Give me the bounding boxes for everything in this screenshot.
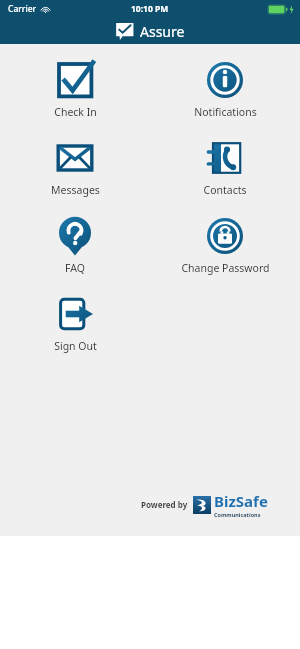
staticText: BizSafe <box>214 491 268 511</box>
other: Notifications <box>205 60 245 100</box>
staticText: Sign Out <box>54 339 97 353</box>
staticText: Communications <box>214 511 261 518</box>
staticText: Assure <box>140 22 185 41</box>
button[interactable]: Sign Out <box>10 287 140 353</box>
staticText: FAQ <box>65 261 85 275</box>
other: FAQ <box>55 216 95 256</box>
button[interactable]: Notifications <box>160 53 290 119</box>
button[interactable]: Check In <box>10 53 140 119</box>
staticText: 10:10 PM <box>131 3 169 15</box>
staticText: Carrier <box>8 3 37 15</box>
button[interactable]: Messages <box>10 131 140 197</box>
button[interactable]: Change Password <box>160 209 290 275</box>
other: Sign Out <box>55 294 95 334</box>
button[interactable]: FAQ <box>10 209 140 275</box>
staticText: Change Password <box>181 261 270 275</box>
other: Change Password <box>205 216 245 256</box>
other: Contacts <box>205 138 245 178</box>
other: Check In <box>55 60 95 100</box>
button[interactable]: Contacts <box>160 131 290 197</box>
staticText: Contacts <box>203 183 247 197</box>
staticText: Notifications <box>194 105 257 119</box>
staticText: Powered by <box>141 499 188 510</box>
other: Messages <box>55 138 95 178</box>
staticText: Check In <box>54 105 97 119</box>
staticText: Messages <box>51 183 100 197</box>
